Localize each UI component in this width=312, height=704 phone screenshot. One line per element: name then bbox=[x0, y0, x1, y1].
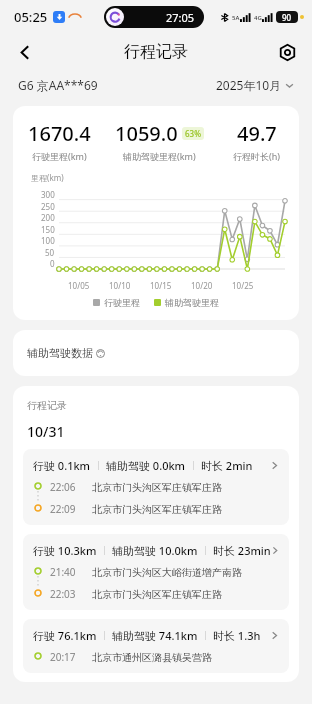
staticText: 10/10 bbox=[109, 280, 131, 291]
staticText: 27:05 bbox=[166, 10, 195, 25]
staticText: 4G bbox=[254, 14, 262, 22]
staticText: 北京市门头沟区大峪街道增产南路 bbox=[92, 566, 242, 579]
staticText: 行驶里程(km) bbox=[32, 150, 87, 162]
button[interactable]: Settings bbox=[272, 37, 302, 67]
staticText: 行驶 10.3km bbox=[33, 543, 97, 558]
staticText: 50 bbox=[45, 247, 55, 258]
staticText: 北京市门头沟区军庄镇军庄路 bbox=[92, 503, 222, 516]
staticText: 22:09 bbox=[50, 502, 76, 516]
staticText: 90 bbox=[282, 12, 292, 23]
staticText: 辅助驾驶 74.1km bbox=[112, 628, 198, 643]
staticText: 21:40 bbox=[50, 565, 76, 579]
staticText: 1670.4 bbox=[28, 120, 91, 147]
staticText: 时长 2min bbox=[201, 458, 253, 473]
staticText: 0 bbox=[50, 258, 55, 269]
staticText: 22:06 bbox=[50, 480, 76, 494]
staticText: 行驶里程 bbox=[104, 297, 140, 308]
staticText: 辅助驾驶 0.0km bbox=[106, 458, 186, 473]
staticText: 北京市门头沟区军庄镇军庄路 bbox=[92, 481, 222, 494]
button[interactable]: 2025年10月 bbox=[216, 77, 294, 93]
staticText: 辅助驾驶里程 bbox=[165, 297, 219, 308]
staticText: 200 bbox=[41, 212, 55, 223]
staticText: G6 京AA***69 bbox=[18, 77, 98, 93]
staticText: 10/15 bbox=[150, 280, 172, 291]
staticText: 行程时长(h) bbox=[233, 150, 280, 162]
staticText: 时长 1.3h bbox=[213, 628, 261, 643]
staticText: 10/25 bbox=[232, 280, 254, 291]
button[interactable]: 行驶 10.3km bbox=[23, 534, 289, 610]
button[interactable]: 辅助驾驶数据 bbox=[13, 330, 299, 376]
staticText: 北京市门头沟区军庄镇军庄路 bbox=[92, 588, 222, 601]
button[interactable]: Back bbox=[10, 37, 40, 67]
staticText: 63% bbox=[185, 128, 201, 139]
staticText: 辅助驾驶数据 bbox=[27, 346, 93, 360]
staticText: 100 bbox=[41, 235, 55, 246]
staticText: 300 bbox=[41, 189, 55, 200]
staticText: 北京市通州区潞县镇吴营路 bbox=[92, 651, 212, 664]
staticText: 1059.0 bbox=[115, 120, 178, 147]
staticText: 行程记录 bbox=[124, 42, 188, 62]
staticText: 行驶 0.1km bbox=[33, 458, 91, 473]
staticText: 辅助驾驶里程(km) bbox=[123, 150, 196, 162]
staticText: 里程(km) bbox=[31, 172, 64, 183]
staticText: 150 bbox=[41, 224, 55, 235]
staticText: 250 bbox=[41, 201, 55, 212]
staticText: 05:25 bbox=[14, 8, 48, 26]
staticText: 10/31 bbox=[27, 422, 65, 441]
staticText: 10/20 bbox=[191, 280, 213, 291]
staticText: 20:17 bbox=[50, 650, 76, 664]
staticText: 行驶 76.1km bbox=[33, 628, 97, 643]
staticText: 22:03 bbox=[50, 587, 76, 601]
button[interactable]: 行驶 76.1km bbox=[23, 619, 289, 673]
staticText: 2025年10月 bbox=[216, 77, 282, 93]
staticText: 行程记录 bbox=[27, 399, 67, 412]
staticText: 时长 23min bbox=[213, 543, 271, 558]
staticText: 49.7 bbox=[237, 120, 277, 147]
button[interactable]: 行驶 0.1km bbox=[23, 449, 289, 525]
staticText: 10/05 bbox=[68, 280, 90, 291]
staticText: 辅助驾驶 10.0km bbox=[112, 543, 198, 558]
staticText: 5A bbox=[232, 14, 240, 22]
